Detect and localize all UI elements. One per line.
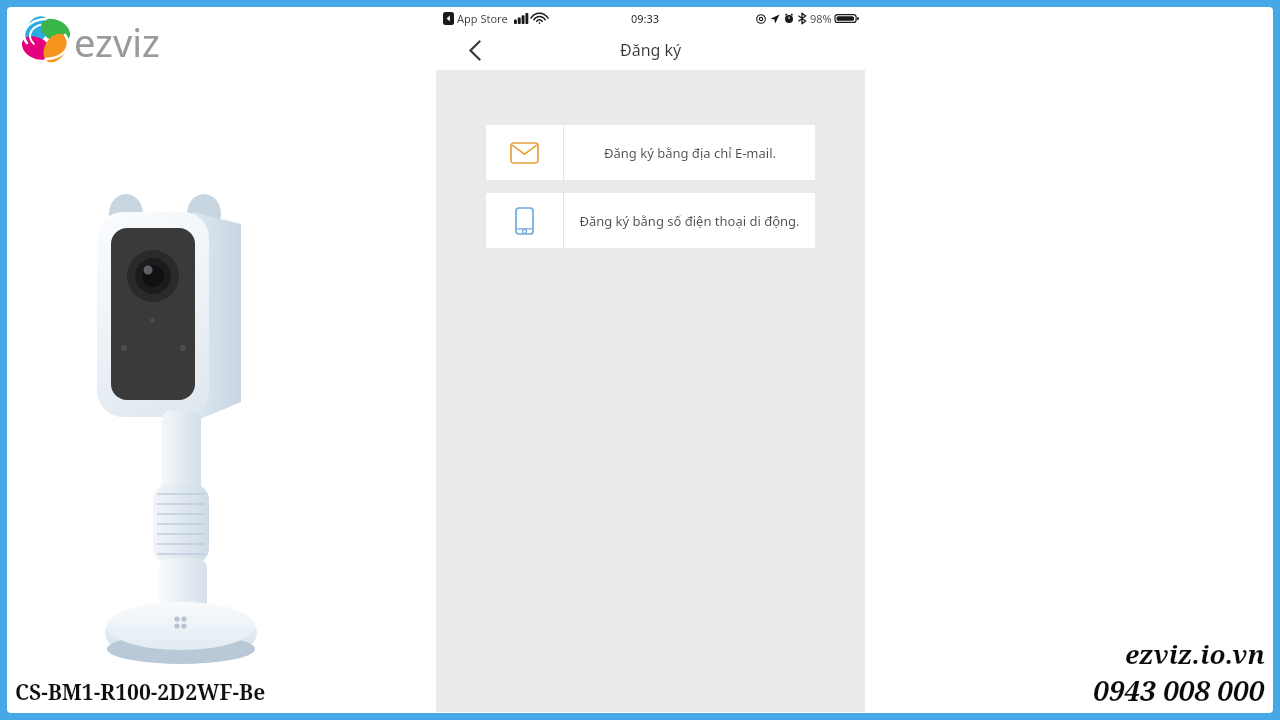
staticText: Đăng ký bằng địa chỉ E-mail.	[604, 144, 776, 162]
staticText: ezviz.io.vn	[1125, 636, 1265, 671]
staticText: 98%	[810, 11, 832, 26]
staticText: CS-BM1-R100-2D2WF-Be	[15, 678, 266, 707]
staticText: 0943 008 000	[1093, 671, 1265, 709]
staticText: ezviz	[74, 16, 160, 68]
staticText: Đăng ký bằng số điện thoại di động.	[579, 212, 800, 230]
button[interactable]: Đăng ký bằng địa chỉ E-mail.	[486, 125, 815, 180]
button[interactable]: Back	[458, 33, 492, 67]
staticText: Đăng ký	[620, 39, 682, 61]
button[interactable]: Đăng ký bằng số điện thoại di động.	[486, 193, 815, 248]
staticText: 09:33	[631, 11, 660, 26]
staticText: App Store	[457, 11, 508, 26]
